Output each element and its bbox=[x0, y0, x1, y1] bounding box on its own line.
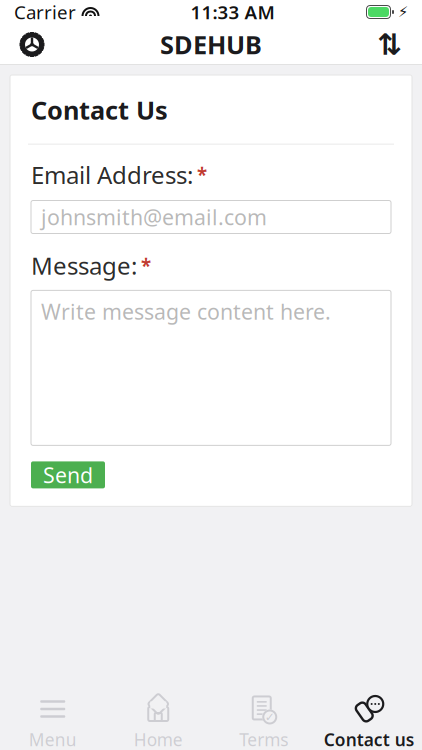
button[interactable]: Home bbox=[105, 688, 211, 750]
staticText: ✓ bbox=[265, 710, 275, 724]
staticText: Contact us bbox=[324, 728, 415, 750]
button[interactable]: johnsmith@email.com bbox=[31, 200, 391, 233]
button[interactable]: Contact us bbox=[316, 688, 422, 750]
staticText: Menu bbox=[29, 728, 77, 750]
staticText: Terms bbox=[239, 728, 288, 750]
button[interactable]: Send bbox=[31, 461, 105, 488]
staticText: Send bbox=[43, 461, 93, 489]
staticText: ⇅ bbox=[377, 28, 402, 61]
button[interactable]: Settings bbox=[6, 24, 58, 64]
staticText: Contact Us bbox=[31, 93, 168, 127]
staticText: 11:33 AM bbox=[190, 0, 274, 24]
button[interactable]: ✓ bbox=[211, 688, 316, 750]
staticText: Email Address: bbox=[31, 159, 193, 190]
button[interactable]: Write message content here. bbox=[31, 290, 391, 445]
staticText: * bbox=[141, 253, 151, 278]
staticText: SDEHUB bbox=[160, 28, 262, 61]
staticText: * bbox=[197, 162, 207, 187]
button[interactable]: Menu bbox=[0, 688, 105, 750]
staticText: Message: bbox=[31, 249, 137, 281]
staticText: Write message content here. bbox=[41, 297, 331, 326]
staticText: Carrier bbox=[14, 0, 76, 24]
staticText: Home bbox=[134, 728, 183, 750]
staticText: ⚡︎ bbox=[398, 4, 408, 20]
button[interactable]: Refresh bbox=[364, 24, 416, 64]
staticText: johnsmith@email.com bbox=[41, 203, 267, 231]
